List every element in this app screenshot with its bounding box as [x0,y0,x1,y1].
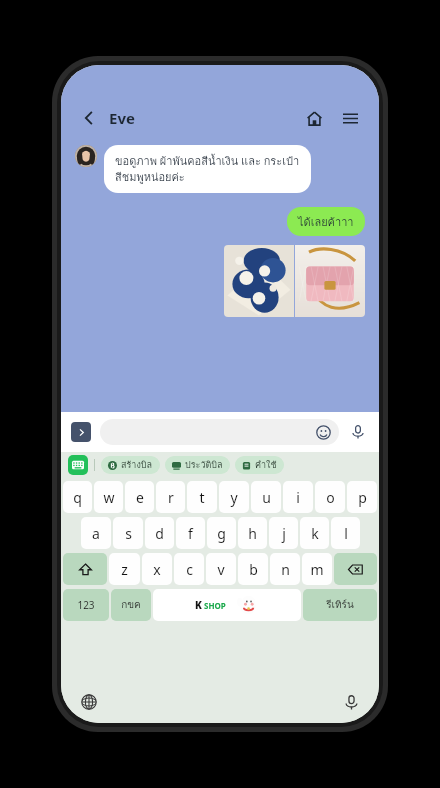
staticText: r [168,488,174,507]
button[interactable]: m [302,553,332,585]
staticText: c [186,560,193,579]
button[interactable]: x [142,553,172,585]
button[interactable]: s [113,517,143,549]
staticText: คำใช้ [255,458,277,472]
staticText: ขอดูภาพ ผ้าพันคอสีน้ำเงิน และ กระเป๋า สี… [115,152,300,186]
button[interactable]: j [269,517,298,549]
staticText: 123 [77,598,95,612]
staticText: y [230,488,238,507]
button[interactable]: Emoji [100,419,339,445]
button[interactable]: n [270,553,300,585]
staticText: k [311,524,319,543]
staticText: h [248,524,257,543]
staticText: p [358,488,367,507]
staticText: s [125,524,132,543]
staticText: j [282,524,286,543]
staticText: l [344,524,348,543]
button[interactable] [224,245,365,317]
staticText: ได้เลยค้าาา [298,213,354,230]
button[interactable]: r [156,481,185,513]
staticText: ประวัติบิล [185,458,223,472]
button[interactable]: Shift [63,553,107,585]
button[interactable]: k [300,517,329,549]
staticText: SHOP [204,600,226,611]
staticText: q [73,488,82,507]
button[interactable]: รีเทิร์น [303,589,377,621]
button[interactable]: w [94,481,123,513]
staticText: x [153,560,161,579]
staticText: t [199,488,205,507]
staticText: e [136,488,144,507]
staticText: v [217,560,225,579]
staticText: z [121,560,128,579]
button[interactable]: a [81,517,111,549]
staticText: Eve [109,108,135,128]
button[interactable]: Voice message [347,421,369,443]
staticText: กขค [121,597,141,613]
button[interactable]: f [176,517,205,549]
staticText: i [296,488,300,507]
button[interactable]: ประวัติบิล [165,456,230,474]
button[interactable]: b [238,553,268,585]
other: Emoji [314,423,332,441]
staticText: w [103,488,115,507]
staticText: n [281,560,290,579]
button[interactable]: คำใช้ [235,456,284,474]
button[interactable]: กขค [111,589,151,621]
button[interactable]: l [331,517,360,549]
button[interactable]: q [63,481,92,513]
button[interactable]: 123 [63,589,109,621]
button[interactable]: Voice input [339,690,363,714]
staticText: K [195,598,202,612]
staticText: d [155,524,164,543]
staticText: o [326,488,335,507]
button[interactable]: t [187,481,217,513]
staticText: b [249,560,258,579]
button[interactable]: Keyboard [68,455,88,475]
button[interactable]: d [145,517,174,549]
button[interactable]: p [347,481,377,513]
button[interactable]: Change language [77,690,101,714]
staticText: g [217,524,226,543]
button[interactable]: Back [77,106,101,130]
staticText: f [188,524,193,543]
button[interactable]: v [206,553,236,585]
button[interactable]: h [238,517,267,549]
staticText: รีเทิร์น [326,597,354,613]
button[interactable]: g [207,517,236,549]
staticText: สร้างบิล [121,458,153,472]
button[interactable]: i [283,481,313,513]
button[interactable]: Backspace [334,553,377,585]
staticText: m [310,560,324,579]
button[interactable]: z [109,553,140,585]
button[interactable]: K [153,589,301,621]
staticText: a [92,524,100,543]
button[interactable]: o [315,481,345,513]
button[interactable]: e [125,481,154,513]
button[interactable]: Home [301,105,327,131]
button[interactable]: c [174,553,204,585]
staticText: u [262,488,271,507]
button[interactable]: Expand [71,422,91,442]
button[interactable]: u [251,481,281,513]
button[interactable]: สร้างบิล [101,456,160,474]
button[interactable]: Menu [337,105,363,131]
button[interactable]: y [219,481,249,513]
